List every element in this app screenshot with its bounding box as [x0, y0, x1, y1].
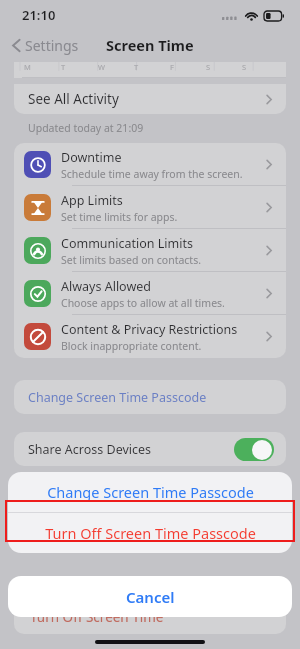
staticText: See All Activity: [28, 90, 119, 108]
staticText: M: [24, 62, 31, 72]
staticText: Downtime: [61, 149, 122, 166]
button[interactable]: Downtime: [14, 143, 286, 186]
button[interactable]: Content & Privacy Restrictions: [14, 315, 286, 358]
staticText: Settings: [25, 36, 79, 55]
button[interactable]: Always Allowed: [14, 272, 286, 315]
staticText: T: [61, 62, 66, 72]
staticText: Always Allowed: [61, 278, 151, 295]
button[interactable]: Share Across Devices: [14, 432, 286, 466]
staticText: Turn Off Screen Time Passcode: [45, 523, 256, 543]
button[interactable]: Turn Off Screen Time: [14, 600, 286, 634]
button[interactable]: App Limits: [14, 186, 286, 229]
button[interactable]: Turn Off Screen Time Passcode: [8, 513, 292, 553]
staticText: Screen Time: [106, 35, 194, 55]
button[interactable]: Change Screen Time Passcode: [8, 472, 292, 512]
staticText: F: [170, 62, 174, 72]
button[interactable]: Communication Limits: [14, 229, 286, 272]
staticText: Block inappropriate content.: [61, 339, 202, 353]
staticText: Set up Family Sharing to use Screen Time…: [28, 476, 268, 490]
staticText: S: [206, 62, 211, 72]
staticText: Change Screen Time Passcode: [47, 482, 254, 502]
staticText: Set time limits for apps.: [61, 210, 178, 224]
button[interactable]: Settings: [10, 32, 81, 59]
staticText: W: [98, 62, 105, 72]
staticText: 21:10: [22, 6, 56, 24]
staticText: Updated today at 21:09: [28, 121, 144, 135]
staticText: Change Screen Time Passcode: [28, 389, 207, 406]
staticText: Set limits based on contacts.: [61, 253, 201, 267]
staticText: Communication Limits: [61, 235, 193, 252]
button[interactable]: Cancel: [8, 576, 292, 617]
staticText: S: [242, 62, 247, 72]
staticText: Content & Privacy Restrictions: [61, 321, 238, 338]
staticText: Turn Off Screen Time: [30, 608, 164, 626]
staticText: Cancel: [126, 587, 175, 607]
button[interactable]: Change Screen Time Passcode: [14, 380, 286, 414]
staticText: Share Across Devices: [28, 441, 152, 458]
staticText: App Limits: [61, 192, 123, 209]
staticText: Schedule time away from the screen.: [61, 167, 243, 181]
button[interactable]: See All Activity: [14, 84, 286, 114]
staticText: Choose apps to allow at all times.: [61, 296, 225, 310]
staticText: T: [134, 62, 139, 72]
